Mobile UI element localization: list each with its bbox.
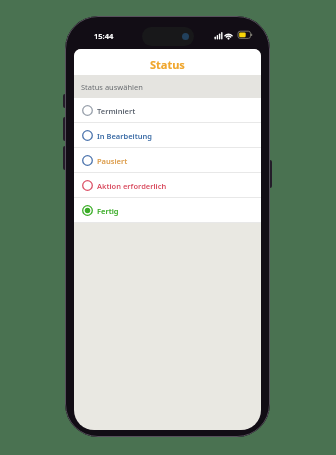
button[interactable]: Terminiert — [74, 98, 261, 123]
staticText: In Bearbeitung — [97, 131, 152, 141]
staticText: Terminiert — [97, 106, 136, 116]
button[interactable]: Aktion erforderlich — [74, 173, 261, 198]
staticText: Fertig — [97, 206, 119, 216]
staticText: Status auswählen — [81, 82, 143, 92]
button[interactable]: In Bearbeitung — [74, 123, 261, 148]
button[interactable]: Fertig — [74, 198, 261, 223]
staticText: Aktion erforderlich — [97, 181, 167, 191]
button[interactable]: Pausiert — [74, 148, 261, 173]
staticText: 15:44 — [94, 31, 114, 41]
staticText: Pausiert — [97, 156, 128, 166]
staticText: Status — [150, 57, 185, 72]
